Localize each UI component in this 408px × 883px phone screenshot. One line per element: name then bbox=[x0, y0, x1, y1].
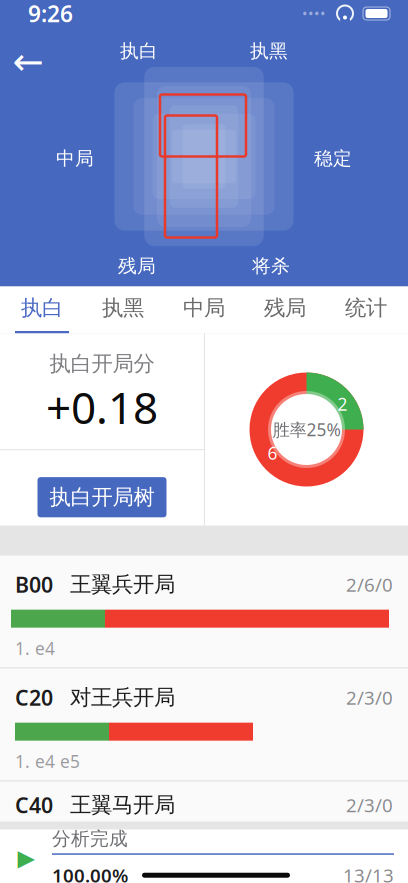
staticText: 执白 bbox=[120, 39, 158, 62]
staticText: 胜率25% bbox=[272, 418, 340, 441]
staticText: 对王兵开局 bbox=[70, 684, 175, 711]
staticText: ← bbox=[12, 40, 43, 83]
staticText: 稳定 bbox=[314, 147, 352, 170]
staticText: 王翼兵开局 bbox=[70, 571, 175, 598]
staticText: 将杀 bbox=[252, 255, 290, 277]
staticText: C40 bbox=[15, 791, 53, 819]
button[interactable]: 执白开局树 bbox=[37, 477, 166, 517]
staticText: 100.00% bbox=[52, 863, 128, 883]
button[interactable]: 中局 bbox=[163, 286, 244, 333]
button[interactable]: 残局 bbox=[244, 286, 325, 333]
staticText: 中局 bbox=[56, 147, 94, 170]
button[interactable]: Back bbox=[4, 39, 52, 83]
button[interactable]: 统计 bbox=[325, 286, 406, 333]
staticText: 1. e4 e5 bbox=[15, 750, 80, 773]
staticText: C20 bbox=[15, 683, 53, 712]
staticText: 执白开局分 bbox=[49, 350, 154, 377]
staticText: 执黑 bbox=[102, 295, 144, 321]
staticText: 2/3/0 bbox=[346, 793, 393, 817]
staticText: 执白 bbox=[21, 295, 63, 321]
staticText: 2/3/0 bbox=[346, 685, 393, 710]
staticText: 分析完成 bbox=[52, 827, 128, 850]
staticText: B00 bbox=[15, 570, 53, 599]
staticText: 1. e4 bbox=[15, 637, 55, 660]
button[interactable]: Play bbox=[0, 829, 52, 883]
staticText: 2 bbox=[337, 392, 347, 415]
staticText: 王翼马开局 bbox=[70, 792, 175, 818]
button[interactable]: 执白 bbox=[1, 286, 82, 333]
button[interactable]: C20 bbox=[0, 668, 408, 780]
staticText: 执白开局树 bbox=[49, 484, 154, 510]
button[interactable]: B00 bbox=[0, 555, 408, 667]
staticText: 6 bbox=[267, 441, 277, 464]
staticText: 中局 bbox=[183, 295, 225, 321]
staticText: 残局 bbox=[264, 295, 306, 321]
staticText: +0.18 bbox=[46, 378, 158, 436]
button[interactable]: C40 bbox=[0, 781, 408, 821]
staticText: 9:26 bbox=[28, 0, 73, 28]
button[interactable]: 执黑 bbox=[82, 286, 163, 333]
staticText: 2/6/0 bbox=[346, 572, 393, 597]
staticText: 13/13 bbox=[343, 863, 394, 883]
staticText: 残局 bbox=[118, 255, 156, 277]
staticText: ▶ bbox=[17, 845, 34, 871]
staticText: 统计 bbox=[345, 295, 387, 321]
staticText: 执黑 bbox=[250, 39, 288, 62]
staticText: •••• bbox=[302, 4, 326, 23]
